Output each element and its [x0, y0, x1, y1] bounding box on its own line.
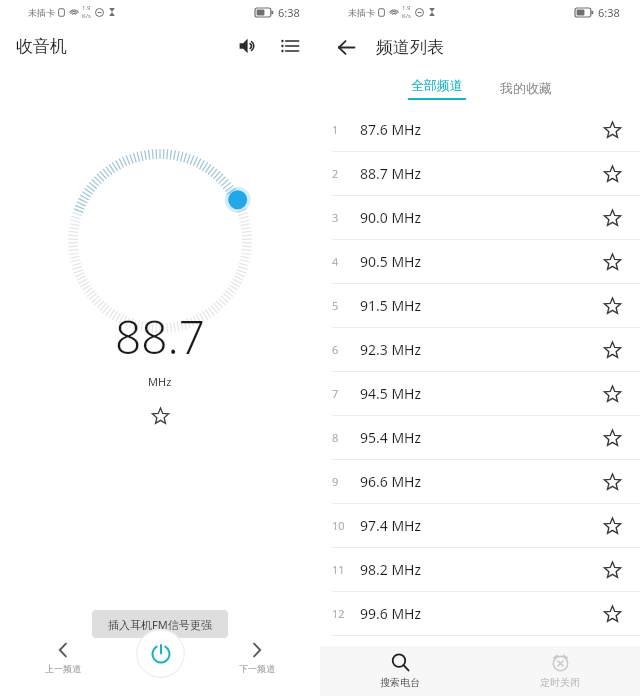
staticText: 上一频道 — [45, 663, 81, 674]
button[interactable]: Favorite 96.6 — [598, 468, 626, 496]
staticText: 1 — [332, 122, 339, 137]
staticText: 90.5 MHz — [360, 252, 422, 271]
staticText: 全部频道 — [411, 77, 463, 93]
staticText: 6:38 — [598, 5, 620, 20]
staticText: K/s — [82, 12, 91, 20]
button[interactable]: 2 — [320, 152, 640, 196]
staticText: 定时关闭 — [540, 676, 580, 689]
staticText: 94.5 MHz — [360, 384, 422, 403]
button[interactable]: 我的收藏 — [490, 76, 562, 100]
button[interactable]: Favorite 95.4 — [598, 424, 626, 452]
button[interactable]: 10 — [320, 504, 640, 548]
staticText: 6 — [332, 342, 339, 357]
staticText: 90.0 MHz — [360, 208, 422, 227]
staticText: 88.7 MHz — [360, 164, 422, 183]
staticText: 未插卡 — [28, 7, 55, 18]
button[interactable]: 11 — [320, 548, 640, 592]
staticText: 9 — [332, 474, 339, 489]
staticText: 10 — [332, 518, 345, 533]
staticText: 87.6 MHz — [360, 120, 422, 139]
staticText: 98.2 MHz — [360, 560, 422, 579]
button[interactable]: 1 — [320, 108, 640, 152]
button[interactable]: Favorite 88.7 — [598, 160, 626, 188]
button[interactable]: Favorite 99.6 — [598, 600, 626, 628]
staticText: 8 — [332, 430, 339, 445]
button[interactable]: Power — [136, 629, 185, 678]
button[interactable]: Favorite 98.2 — [598, 556, 626, 584]
staticText: 频道列表 — [376, 37, 444, 58]
staticText: 1.9 — [82, 4, 91, 12]
button[interactable]: 9 — [320, 460, 640, 504]
staticText: 4 — [332, 254, 339, 269]
button[interactable]: Favorite 90.5 — [598, 248, 626, 276]
staticText: MHz — [148, 374, 172, 389]
staticText: 下一频道 — [239, 663, 275, 674]
staticText: 我的收藏 — [500, 80, 552, 96]
staticText: 12 — [332, 606, 345, 621]
staticText: K/s — [402, 12, 411, 20]
button[interactable]: 12 — [320, 592, 640, 636]
button[interactable]: Channel list — [272, 28, 308, 64]
button[interactable]: Favorite 87.6 — [598, 116, 626, 144]
staticText: 92.3 MHz — [360, 340, 422, 359]
staticText: 95.4 MHz — [360, 428, 422, 447]
staticText: 96.6 MHz — [360, 472, 422, 491]
staticText: 7 — [332, 386, 339, 401]
button[interactable]: Favorite — [147, 403, 173, 429]
staticText: 5 — [332, 298, 339, 313]
button[interactable]: 7 — [320, 372, 640, 416]
button[interactable]: Favorite 94.5 — [598, 380, 626, 408]
button[interactable]: 搜索电台 — [320, 646, 480, 696]
staticText: 1.9 — [402, 4, 411, 12]
staticText: 11 — [332, 562, 345, 577]
staticText: 搜索电台 — [380, 676, 420, 689]
button[interactable]: 下一频道 — [227, 632, 287, 684]
staticText: 插入耳机FM信号更强 — [108, 617, 212, 632]
staticText: 99.6 MHz — [360, 604, 422, 623]
button[interactable]: 定时关闭 — [480, 646, 640, 696]
button[interactable]: Favorite 92.3 — [598, 336, 626, 364]
button[interactable]: 6 — [320, 328, 640, 372]
button[interactable]: Back — [326, 27, 366, 67]
staticText: 收音机 — [16, 36, 67, 57]
staticText: 3 — [332, 210, 339, 225]
staticText: 6:38 — [278, 5, 300, 20]
button[interactable]: Favorite 90.0 — [598, 204, 626, 232]
button[interactable]: 全部频道 — [398, 77, 476, 100]
staticText: 2 — [332, 166, 339, 181]
button[interactable]: 8 — [320, 416, 640, 460]
button[interactable]: 5 — [320, 284, 640, 328]
button[interactable]: 3 — [320, 196, 640, 240]
staticText: 91.5 MHz — [360, 296, 422, 315]
button[interactable]: Favorite 91.5 — [598, 292, 626, 320]
staticText: 未插卡 — [348, 7, 375, 18]
button[interactable]: Speaker — [230, 28, 266, 64]
button[interactable]: 上一频道 — [33, 632, 93, 684]
staticText: 88.7 — [115, 305, 206, 368]
button[interactable]: 4 — [320, 240, 640, 284]
button[interactable]: Favorite 97.4 — [598, 512, 626, 540]
staticText: 97.4 MHz — [360, 516, 422, 535]
